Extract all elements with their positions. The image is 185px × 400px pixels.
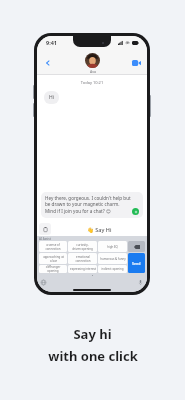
button[interactable]: a sense of connection (39, 241, 67, 252)
button[interactable]: Backspace (128, 241, 145, 252)
button[interactable]: Back (41, 56, 54, 69)
button[interactable]: Add (132, 208, 139, 215)
button[interactable]: Send (128, 253, 145, 273)
staticText: Today 10:21 (37, 80, 147, 85)
staticText: cliffhanger opening (40, 265, 66, 273)
button[interactable]: Hey there, gorgeous. I couldn't help but… (41, 192, 143, 218)
staticText: Hi (49, 94, 54, 101)
staticText: 👋 Say Hi (87, 226, 112, 233)
staticText: approaching at a bar (43, 255, 64, 263)
button[interactable]: Contact avatar (85, 53, 100, 68)
staticText: humorous & funny (100, 257, 126, 261)
staticText: emotional connection (75, 255, 91, 263)
button[interactable]: indirect opening (98, 265, 127, 273)
button[interactable]: Hi (44, 91, 59, 104)
button[interactable]: Video call (130, 56, 143, 69)
staticText: a sense of connection (45, 243, 61, 251)
button[interactable]: Clipboard (39, 223, 51, 235)
staticText: Hey there, gorgeous. I couldn't help but… (45, 195, 131, 215)
button[interactable]: expressing interest (68, 265, 97, 273)
button[interactable]: high EQ (98, 241, 127, 252)
button[interactable]: cliffhanger opening (39, 265, 67, 273)
staticText: high EQ (107, 245, 118, 249)
staticText: AI Assist (39, 237, 51, 241)
staticText: 9:41 (46, 39, 57, 46)
button[interactable]: approaching at a bar (39, 253, 67, 264)
staticText: with one click (48, 347, 138, 365)
staticText: Ava (90, 69, 96, 74)
staticText: Say hi (73, 325, 112, 343)
staticText: expressing interest (70, 267, 96, 271)
button[interactable]: Change language (40, 279, 47, 286)
staticText: indirect opening (101, 267, 124, 271)
button[interactable]: 👋 Say Hi (53, 223, 145, 235)
button[interactable]: curiosity- driven opening (68, 241, 97, 252)
button[interactable]: emotional connection (68, 253, 97, 264)
button[interactable]: humorous & funny (98, 253, 127, 264)
staticText: Send (132, 261, 141, 266)
button[interactable]: Voice input (137, 279, 144, 286)
staticText: curiosity- driven opening (72, 243, 93, 251)
